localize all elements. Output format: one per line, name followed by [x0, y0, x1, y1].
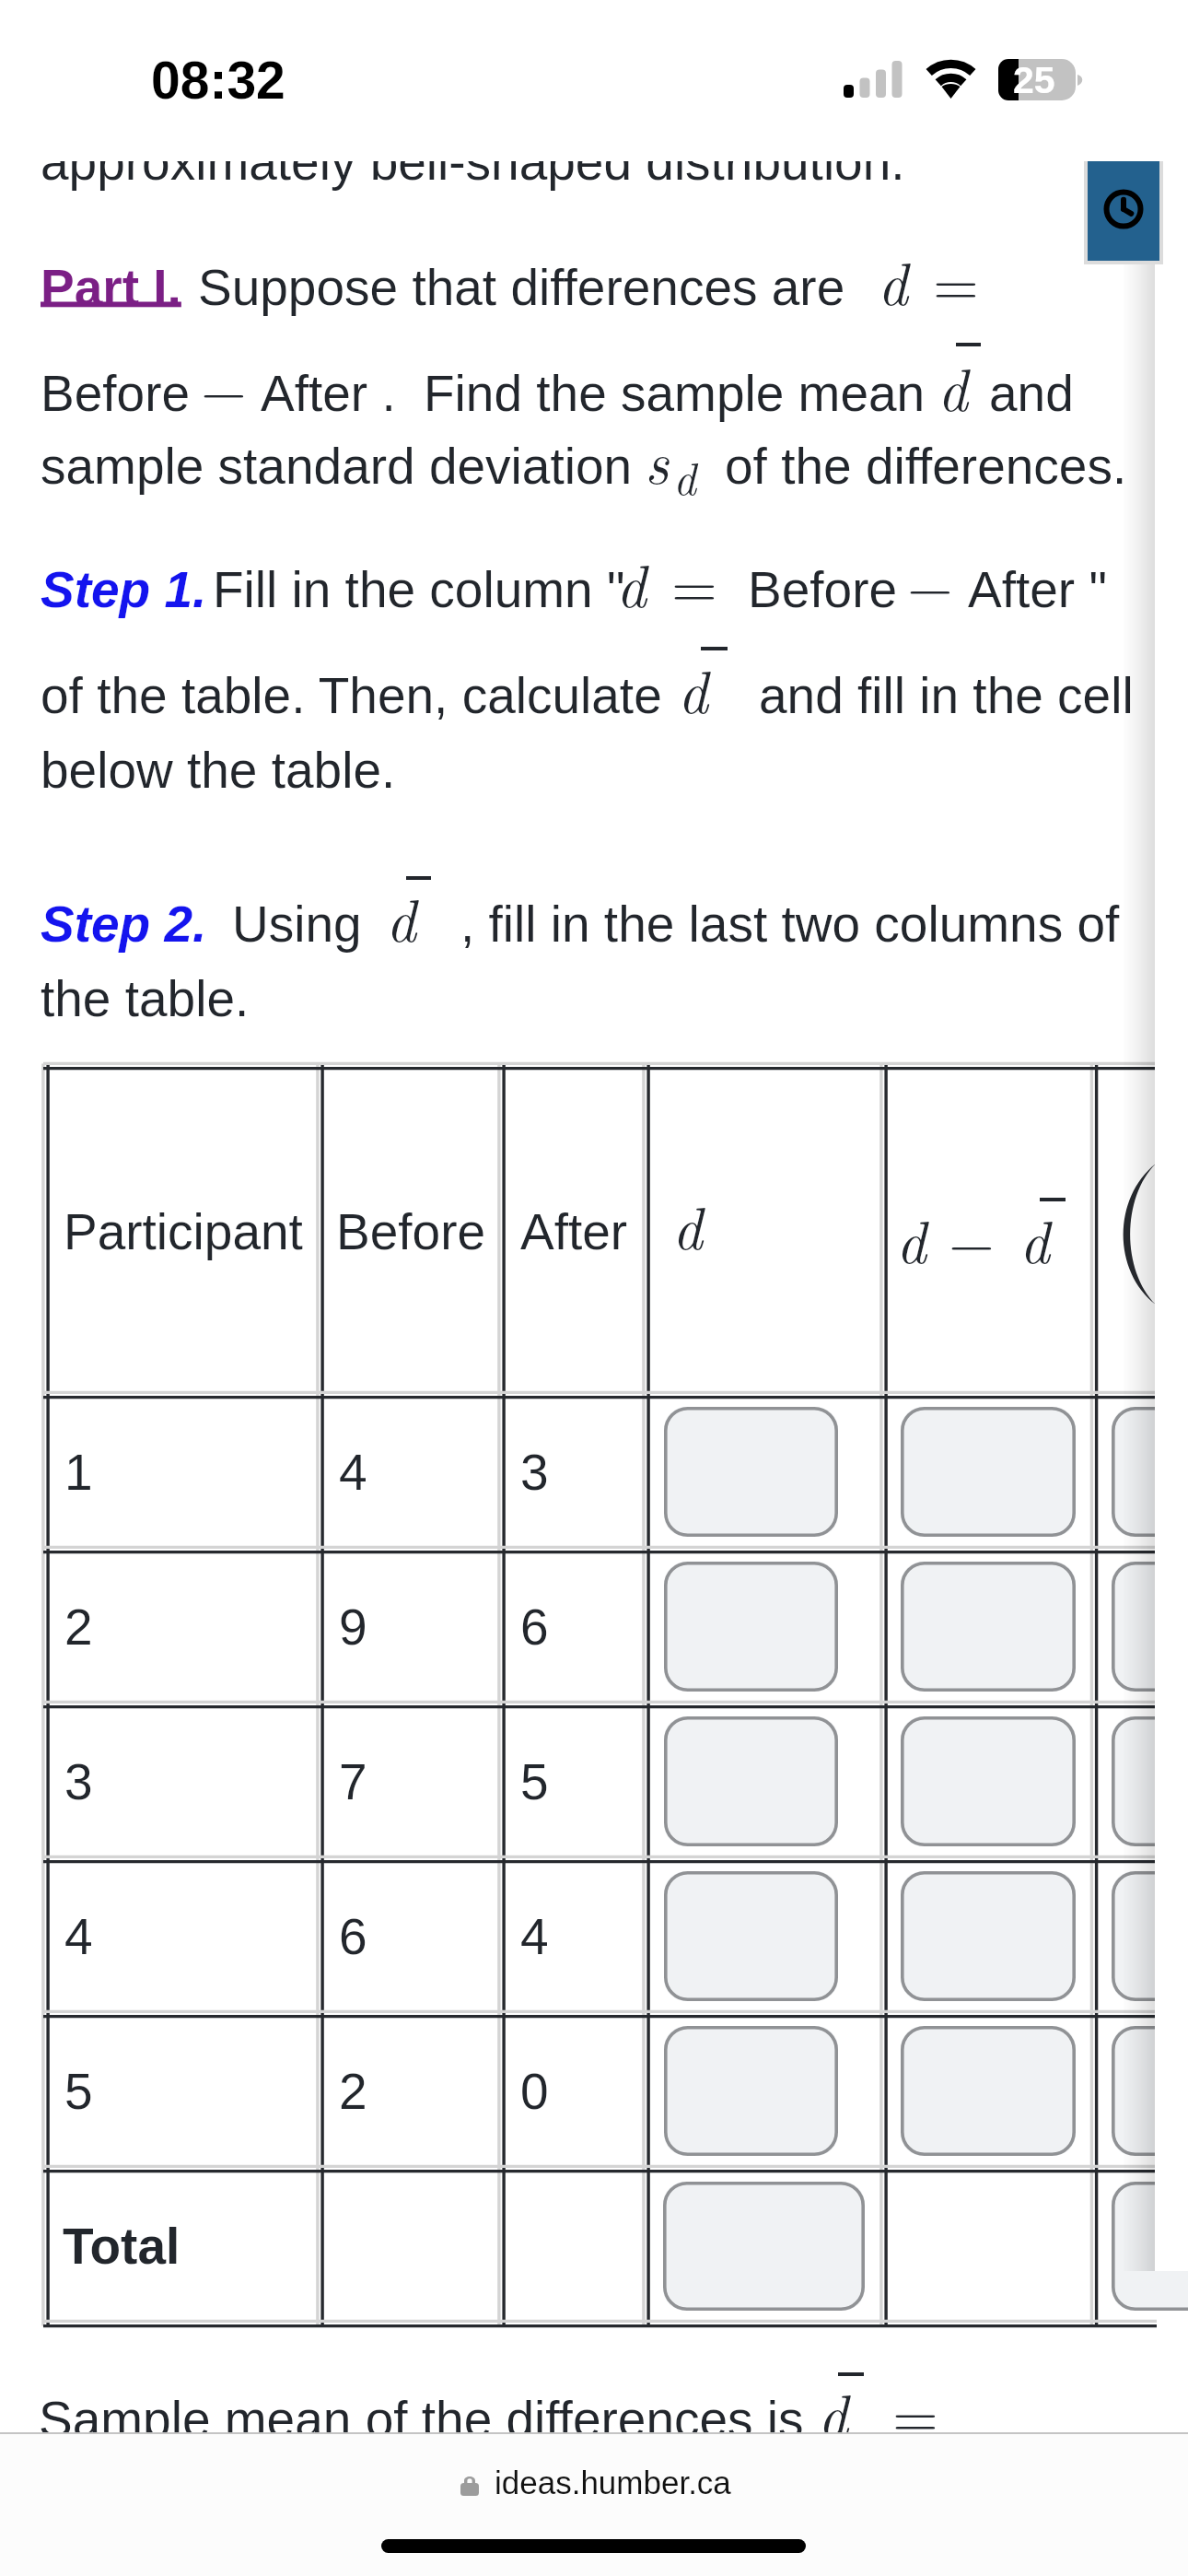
button[interactable]: 6: [339, 1908, 367, 1964]
staticText: After: [520, 1203, 628, 1259]
button[interactable]: Answer field: [664, 1407, 838, 1537]
staticText: Part I.: [41, 259, 181, 315]
button[interactable]: 7: [339, 1753, 367, 1809]
button[interactable]: 3: [520, 1444, 549, 1500]
staticText: and fill in the cell: [759, 667, 1134, 723]
staticText: Participant: [64, 1203, 303, 1259]
staticText: Using: [232, 896, 362, 952]
button[interactable]: Answer field: [1112, 1716, 1188, 1846]
staticText: 6: [520, 1598, 549, 1655]
button[interactable]: Answer field: [901, 1871, 1076, 2001]
staticText: Step 1.: [41, 561, 207, 617]
staticText: below the table.: [41, 742, 396, 798]
staticText: of the differences.: [725, 438, 1127, 494]
staticText: of the table. Then, calculate: [41, 667, 662, 723]
staticText: ideas.humber.ca: [495, 2465, 731, 2500]
staticText: 6: [339, 1908, 367, 1964]
staticText: Suppose that differences are: [198, 259, 845, 315]
staticText: 4: [64, 1908, 93, 1964]
staticText: Step 2.: [41, 896, 207, 952]
staticText: After .: [261, 365, 396, 421]
staticText: =: [892, 2371, 938, 2432]
staticText: Sample mean of the differences is: [39, 2391, 804, 2432]
staticText: d: [672, 1183, 703, 1267]
staticText: Total: [63, 2218, 181, 2274]
staticText: d: [1019, 1197, 1050, 1281]
staticText: Before: [41, 365, 191, 421]
button[interactable]: Step 2.: [41, 896, 207, 952]
staticText: the table.: [41, 970, 250, 1026]
staticText: 25: [1013, 59, 1055, 101]
staticText: d: [678, 647, 708, 731]
button[interactable]: Total: [63, 2218, 181, 2274]
button[interactable]: Answer field: [664, 1871, 838, 2001]
button[interactable]: Answer field: [901, 2026, 1076, 2156]
button[interactable]: ideas.humber.ca: [424, 2462, 764, 2519]
staticText: 7: [339, 1753, 367, 1809]
staticText: −: [907, 541, 953, 625]
button[interactable]: 0: [520, 2063, 549, 2119]
staticText: 4: [339, 1444, 367, 1500]
button[interactable]: Part I.: [41, 259, 181, 315]
staticText: , fill in the last two columns of: [460, 896, 1120, 952]
staticText: d: [938, 345, 968, 428]
staticText: −: [949, 1197, 995, 1281]
button[interactable]: Answer field: [663, 2182, 865, 2311]
staticText: 2: [64, 1598, 93, 1655]
staticText: 4: [520, 1908, 549, 1964]
button[interactable]: Answer field: [664, 1562, 838, 1692]
button[interactable]: Timer: [1084, 161, 1163, 264]
staticText: d: [878, 239, 908, 322]
button[interactable]: Answer field: [1112, 1407, 1188, 1537]
staticText: 0: [520, 2063, 549, 2119]
button[interactable]: Answer field: [901, 1562, 1076, 1692]
staticText: d: [818, 2371, 848, 2432]
button[interactable]: Before: [320, 1203, 502, 1259]
button[interactable]: 2: [64, 1598, 93, 1655]
staticText: −: [201, 345, 247, 428]
button[interactable]: Answer field: [664, 1716, 838, 1846]
button[interactable]: 5: [64, 2063, 93, 2119]
staticText: d: [673, 444, 696, 508]
staticText: s: [645, 417, 670, 501]
button[interactable]: 3: [64, 1753, 93, 1809]
staticText: 2: [339, 2063, 367, 2119]
staticText: 5: [520, 1753, 549, 1809]
staticText: 9: [339, 1598, 367, 1655]
button[interactable]: Participant: [46, 1203, 320, 1259]
staticText: d: [616, 541, 646, 625]
button[interactable]: 9: [339, 1598, 367, 1655]
button[interactable]: Step 1.: [41, 561, 207, 617]
staticText: approximately bell-shaped distribution.: [41, 161, 905, 190]
button[interactable]: 1: [64, 1444, 93, 1500]
button[interactable]: After: [502, 1203, 646, 1259]
button[interactable]: Answer field: [901, 1716, 1076, 1846]
staticText: d: [386, 875, 416, 959]
staticText: =: [933, 239, 979, 322]
staticText: 1: [64, 1444, 93, 1500]
button[interactable]: Answer field: [1112, 1871, 1188, 2001]
staticText: Fill in the column ": [213, 561, 625, 617]
staticText: Before: [336, 1203, 486, 1259]
button[interactable]: Answer field: [1112, 2026, 1188, 2156]
button[interactable]: 6: [520, 1598, 549, 1655]
staticText: Before: [748, 561, 898, 617]
button[interactable]: 4: [339, 1444, 367, 1500]
staticText: and: [989, 365, 1074, 421]
button[interactable]: 4: [64, 1908, 93, 1964]
button[interactable]: 2: [339, 2063, 367, 2119]
staticText: 3: [64, 1753, 93, 1809]
staticText: =: [671, 541, 717, 625]
staticText: d: [896, 1197, 926, 1281]
button[interactable]: Answer field: [1112, 2182, 1188, 2311]
button[interactable]: Answer field: [664, 2026, 838, 2156]
staticText: 3: [520, 1444, 549, 1500]
button[interactable]: 4: [520, 1908, 549, 1964]
button[interactable]: 5: [520, 1753, 549, 1809]
button[interactable]: Answer field: [901, 1407, 1076, 1537]
staticText: sample standard deviation: [41, 438, 633, 494]
button[interactable]: Answer field: [1112, 1562, 1188, 1692]
staticText: 08:32: [151, 51, 285, 110]
staticText: Find the sample mean: [424, 365, 926, 421]
staticText: 5: [64, 2063, 93, 2119]
